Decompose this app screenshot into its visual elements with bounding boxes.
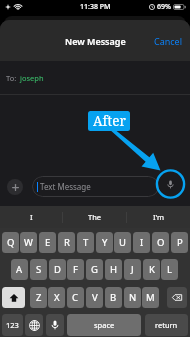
staticText: K bbox=[149, 263, 155, 276]
staticText: return bbox=[155, 320, 178, 330]
staticText: I'm bbox=[153, 212, 165, 222]
staticText: G bbox=[91, 263, 98, 276]
button[interactable]: E bbox=[39, 232, 56, 253]
button[interactable]: T bbox=[77, 232, 94, 253]
staticText: S bbox=[36, 263, 42, 276]
button[interactable]: U bbox=[114, 232, 131, 253]
button[interactable]: N bbox=[124, 287, 141, 308]
button[interactable]: C bbox=[67, 287, 84, 308]
button[interactable]: 123 bbox=[2, 314, 23, 336]
staticText: After bbox=[93, 112, 126, 130]
staticText: V bbox=[92, 291, 98, 304]
button[interactable]: D bbox=[49, 259, 66, 280]
staticText: B bbox=[110, 291, 117, 304]
button[interactable]: space bbox=[67, 314, 141, 336]
button[interactable]: Text Message bbox=[32, 176, 159, 197]
staticText: 11:38 PM bbox=[80, 2, 111, 12]
staticText: W bbox=[24, 236, 33, 249]
staticText: The bbox=[88, 212, 102, 222]
staticText: H bbox=[110, 263, 118, 276]
button[interactable]: I bbox=[0, 206, 62, 228]
staticText: space bbox=[94, 320, 115, 330]
staticText: A bbox=[16, 263, 23, 276]
staticText: joseph bbox=[20, 73, 44, 83]
button[interactable]: Cancel bbox=[147, 29, 190, 53]
button[interactable]: R bbox=[58, 232, 75, 253]
button[interactable]: Switch keyboard bbox=[25, 314, 43, 336]
button[interactable]: K bbox=[143, 259, 160, 280]
button[interactable]: return bbox=[145, 314, 188, 336]
button[interactable]: B bbox=[105, 287, 122, 308]
button[interactable]: I bbox=[133, 232, 150, 253]
button[interactable]: Dictate bbox=[163, 177, 178, 192]
staticText: I bbox=[30, 212, 33, 222]
staticText: M bbox=[146, 291, 155, 304]
button[interactable]: V bbox=[86, 287, 103, 308]
staticText: I bbox=[140, 236, 144, 249]
button[interactable]: Z bbox=[30, 287, 47, 308]
staticText: 123 bbox=[6, 320, 19, 330]
staticText: 69% bbox=[157, 2, 171, 12]
button[interactable]: Shift bbox=[2, 287, 25, 308]
button[interactable]: W bbox=[20, 232, 37, 253]
staticText: T bbox=[83, 236, 89, 249]
staticText: Cancel bbox=[154, 35, 183, 47]
staticText: F bbox=[73, 263, 78, 276]
button[interactable]: Q bbox=[2, 232, 19, 253]
staticText: P bbox=[177, 236, 183, 249]
button[interactable]: H bbox=[105, 259, 122, 280]
staticText: C bbox=[72, 291, 79, 304]
button[interactable]: A bbox=[11, 259, 28, 280]
button[interactable]: M bbox=[142, 287, 159, 308]
button[interactable]: S bbox=[30, 259, 47, 280]
button[interactable]: G bbox=[86, 259, 103, 280]
button[interactable]: Voice input bbox=[46, 314, 64, 336]
button[interactable]: I'm bbox=[127, 206, 190, 228]
button[interactable]: P bbox=[171, 232, 188, 253]
staticText: U bbox=[119, 236, 126, 249]
staticText: D bbox=[54, 263, 61, 276]
staticText: L bbox=[167, 263, 172, 276]
button[interactable]: F bbox=[67, 259, 84, 280]
button[interactable]: L bbox=[161, 259, 178, 280]
button[interactable]: Backspace bbox=[167, 287, 187, 308]
staticText: To: bbox=[6, 73, 17, 83]
button[interactable]: X bbox=[48, 287, 65, 308]
button[interactable]: Y bbox=[96, 232, 113, 253]
staticText: Z bbox=[36, 291, 42, 304]
staticText: J bbox=[131, 263, 134, 276]
staticText: New Message bbox=[65, 35, 126, 47]
staticText: Q bbox=[7, 236, 15, 249]
staticText: Text Message bbox=[40, 181, 91, 192]
staticText: R bbox=[64, 236, 70, 249]
button[interactable]: Add attachment bbox=[7, 179, 23, 195]
button[interactable]: O bbox=[152, 232, 169, 253]
staticText: X bbox=[54, 291, 60, 304]
button[interactable]: J bbox=[124, 259, 141, 280]
staticText: E bbox=[45, 236, 51, 249]
button[interactable]: The bbox=[63, 206, 126, 228]
staticText: N bbox=[129, 291, 137, 304]
staticText: Y bbox=[102, 236, 108, 249]
staticText: O bbox=[157, 236, 165, 249]
